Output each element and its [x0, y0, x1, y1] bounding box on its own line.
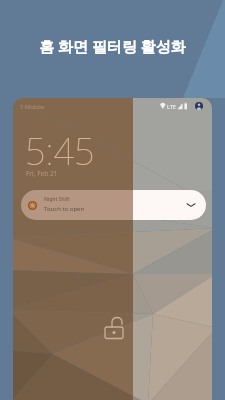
staticText: Touch to open	[44, 205, 85, 213]
staticText: 5:45	[25, 127, 95, 176]
staticText: Night Shift	[44, 196, 70, 203]
staticText: 홈 화면 필터링 활성화	[0, 36, 225, 56]
staticText: Fri, Feb 21	[26, 169, 58, 178]
staticText: T-Mobile	[20, 103, 45, 111]
button[interactable]: Night Shift	[21, 190, 206, 220]
staticText: LTE	[167, 103, 176, 110]
button[interactable]: Account	[195, 102, 203, 110]
